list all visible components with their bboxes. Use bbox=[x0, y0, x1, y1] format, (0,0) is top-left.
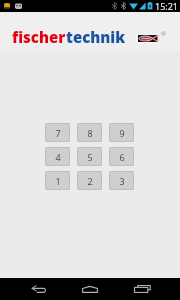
button[interactable]: 1 bbox=[46, 172, 69, 189]
button[interactable]: 9 bbox=[110, 124, 133, 141]
button[interactable]: Home bbox=[64, 278, 116, 300]
staticText: 15:21 bbox=[155, 0, 179, 12]
staticText: ® bbox=[161, 30, 166, 38]
button[interactable]: 3 bbox=[110, 172, 133, 189]
staticText: 7 bbox=[55, 127, 61, 139]
button[interactable]: 7 bbox=[46, 124, 69, 141]
button[interactable]: Recent apps bbox=[116, 278, 168, 300]
staticText: 4 bbox=[55, 151, 61, 163]
button[interactable]: Back bbox=[12, 278, 64, 300]
staticText: 6 bbox=[119, 151, 125, 163]
staticText: technik bbox=[66, 27, 126, 47]
button[interactable]: 8 bbox=[78, 124, 101, 141]
button[interactable]: 6 bbox=[110, 148, 133, 165]
staticText: fischer bbox=[12, 27, 66, 47]
button[interactable]: 5 bbox=[78, 148, 101, 165]
staticText: 3 bbox=[119, 175, 125, 187]
staticText: 9 bbox=[119, 127, 125, 139]
staticText: 5 bbox=[87, 151, 93, 163]
staticText: 2 bbox=[87, 175, 93, 187]
button[interactable]: 2 bbox=[78, 172, 101, 189]
button[interactable]: 4 bbox=[46, 148, 69, 165]
staticText: 8 bbox=[87, 127, 93, 139]
staticText: 1 bbox=[55, 175, 61, 187]
